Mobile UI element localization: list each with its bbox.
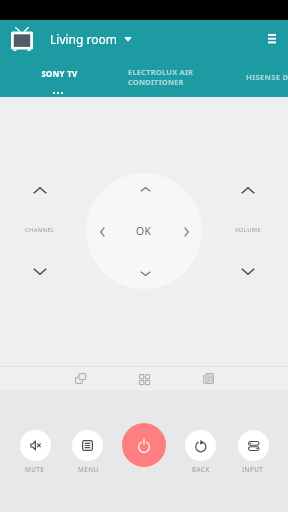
staticText: ELECTROLUX AIR CONDITIONER xyxy=(128,67,194,87)
staticText: VOLUME xyxy=(235,226,262,234)
staticText: INPUT xyxy=(242,465,264,474)
staticText: BACK xyxy=(192,465,210,474)
button[interactable]: Down xyxy=(132,263,159,284)
button[interactable]: BACK xyxy=(185,430,216,461)
button[interactable]: Right xyxy=(176,219,197,245)
button[interactable]: Menu xyxy=(260,27,284,51)
button[interactable]: SONY TV xyxy=(14,58,104,97)
staticText: CHANNEL xyxy=(25,226,55,234)
button[interactable]: ELECTROLUX AIR CONDITIONER xyxy=(128,58,288,97)
button[interactable]: Guide xyxy=(195,366,221,391)
staticText: MUTE xyxy=(25,465,45,474)
button[interactable]: CHANNEL down xyxy=(25,260,55,283)
button[interactable]: Living room xyxy=(50,31,139,47)
button[interactable]: MUTE xyxy=(20,430,51,461)
staticText: HISENSE DVD xyxy=(246,72,288,82)
button[interactable]: Apps xyxy=(131,366,157,391)
button[interactable]: Up xyxy=(132,179,159,200)
staticText: OK xyxy=(136,224,152,238)
button[interactable]: VOLUME up xyxy=(233,179,263,202)
button[interactable]: Left xyxy=(92,219,113,245)
staticText: SONY TV xyxy=(41,68,78,79)
button[interactable]: INPUT xyxy=(238,430,269,461)
staticText: Living room xyxy=(50,31,117,47)
button[interactable]: Device xyxy=(10,26,34,50)
button[interactable]: CHANNEL up xyxy=(25,179,55,202)
button[interactable]: HISENSE DVD xyxy=(246,58,288,97)
button[interactable]: VOLUME down xyxy=(233,260,263,283)
button[interactable]: Picture in picture xyxy=(67,366,93,391)
staticText: MENU xyxy=(78,465,99,474)
button[interactable]: OK xyxy=(86,173,202,289)
button[interactable]: Power xyxy=(122,423,166,467)
button[interactable]: MENU xyxy=(72,430,103,461)
